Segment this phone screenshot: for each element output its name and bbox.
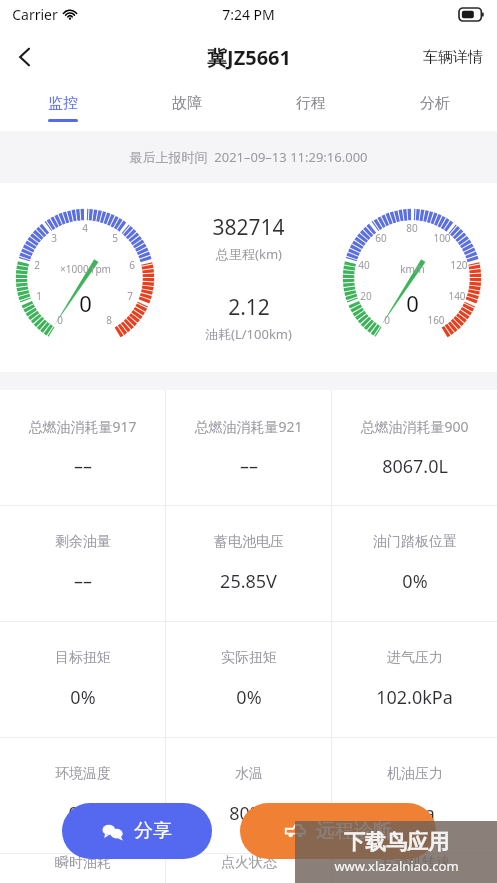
staticText: 40 xyxy=(358,258,370,272)
button[interactable]: 总燃油消耗量917 xyxy=(0,390,165,505)
button[interactable]: 分享 xyxy=(62,803,212,859)
staticText: 382714 xyxy=(212,213,285,242)
staticText: 1 xyxy=(36,289,42,303)
staticText: km/h xyxy=(400,262,425,276)
staticText: 6 xyxy=(129,258,135,272)
button[interactable]: 分析 xyxy=(373,85,497,131)
staticText: 140 xyxy=(448,289,466,303)
staticText: 2.12 xyxy=(228,293,270,322)
button[interactable]: 点火状态 xyxy=(166,854,331,883)
staticText: 102.0kPa xyxy=(376,685,453,710)
staticText: 120 xyxy=(450,258,468,272)
staticText: 分析 xyxy=(420,94,450,113)
staticText: 发动机转速 xyxy=(380,854,450,872)
button[interactable]: 监控 xyxy=(0,85,125,131)
button[interactable]: 进气压力 xyxy=(332,622,497,737)
staticText: 油门踏板位置 xyxy=(373,533,457,551)
staticText: –– xyxy=(74,569,92,594)
button[interactable]: 远程诊断 xyxy=(240,803,436,859)
staticText: 最后上报时间 2021–09–13 11:29:16.000 xyxy=(129,148,368,166)
staticText: 目标扭矩 xyxy=(55,649,111,667)
staticText: 机油压力 xyxy=(387,765,443,783)
staticText: 总燃油消耗量917 xyxy=(28,417,137,436)
staticText: 总燃油消耗量921 xyxy=(194,417,303,436)
staticText: 80℃ xyxy=(229,801,268,826)
staticText: 瞬时油耗 xyxy=(55,854,111,872)
button[interactable]: 行程 xyxy=(249,85,373,131)
staticText: 油耗(L/100km) xyxy=(205,325,292,343)
staticText: 冀JZ5661 xyxy=(207,44,291,71)
staticText: 25.85V xyxy=(220,569,277,594)
staticText: 车辆详情 xyxy=(423,48,483,67)
staticText: 5 xyxy=(112,231,118,245)
staticText: ×1000 rpm xyxy=(60,262,111,276)
staticText: 0 xyxy=(406,288,419,318)
staticText: 0% xyxy=(402,569,428,594)
button[interactable]: 机油压力 xyxy=(332,738,497,853)
staticText: 总里程(km) xyxy=(216,245,282,263)
staticText: 3 xyxy=(51,231,57,245)
staticText: 实际扭矩 xyxy=(221,649,277,667)
staticText: 点火状态 xyxy=(221,854,277,872)
staticText: 80 xyxy=(406,221,418,235)
button[interactable]: 发动机转速 xyxy=(332,854,497,883)
staticText: –– xyxy=(240,454,258,479)
staticText: –– xyxy=(74,454,92,479)
staticText: 进气压力 xyxy=(387,649,443,667)
staticText: Carrier xyxy=(12,5,58,24)
staticText: 20 xyxy=(360,289,372,303)
staticText: 行程 xyxy=(296,94,326,113)
staticText: www.xlazalniao.com xyxy=(334,857,459,875)
staticText: 0% xyxy=(236,685,262,710)
button[interactable]: 故障 xyxy=(125,85,249,131)
staticText: 0kPa xyxy=(394,801,435,826)
staticText: 60 xyxy=(375,231,387,245)
staticText: 总燃油消耗量900 xyxy=(360,417,469,436)
staticText: 环境温度 xyxy=(55,765,111,783)
staticText: 8 xyxy=(106,313,112,327)
button[interactable]: 环境温度 xyxy=(0,738,165,853)
staticText: 0 xyxy=(79,288,92,318)
staticText: 水温 xyxy=(235,765,263,783)
staticText: 100 xyxy=(433,231,451,245)
staticText: 故障 xyxy=(172,94,202,113)
staticText: 7:24 PM xyxy=(222,5,275,24)
button[interactable]: 瞬时油耗 xyxy=(0,854,165,883)
staticText: 4 xyxy=(82,221,88,235)
button[interactable]: 总燃油消耗量921 xyxy=(166,390,331,505)
staticText: 160 xyxy=(427,313,445,327)
staticText: 0 xyxy=(57,313,63,327)
staticText: 0℃ xyxy=(68,801,97,826)
staticText: 蓄电池电压 xyxy=(214,533,284,551)
staticText: 0% xyxy=(70,685,96,710)
button[interactable]: 车辆详情 xyxy=(409,38,497,77)
staticText: 分享 xyxy=(134,819,172,843)
button[interactable]: 目标扭矩 xyxy=(0,622,165,737)
button[interactable]: 油门踏板位置 xyxy=(332,506,497,621)
staticText: 2 xyxy=(34,258,40,272)
button[interactable]: 水温 xyxy=(166,738,331,853)
button[interactable]: 剩余油量 xyxy=(0,506,165,621)
button[interactable]: 总燃油消耗量900 xyxy=(332,390,497,505)
staticText: 下载鸟应用 xyxy=(344,829,449,855)
button[interactable]: Back xyxy=(0,32,50,82)
staticText: 0 xyxy=(384,313,390,327)
staticText: 8067.0L xyxy=(382,454,448,479)
staticText: 监控 xyxy=(48,94,78,113)
button[interactable]: 实际扭矩 xyxy=(166,622,331,737)
button[interactable]: 蓄电池电压 xyxy=(166,506,331,621)
staticText: 7 xyxy=(127,289,133,303)
staticText: 剩余油量 xyxy=(55,533,111,551)
staticText: 远程诊断 xyxy=(316,819,392,843)
